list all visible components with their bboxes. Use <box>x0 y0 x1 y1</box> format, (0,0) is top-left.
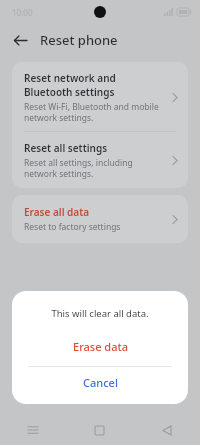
button[interactable]: Erase all data <box>12 195 188 243</box>
button[interactable]: Cancel <box>12 367 188 398</box>
staticText: Reset all settings, including network se… <box>24 157 166 179</box>
staticText: Reset Wi-Fi, Bluetooth and mobile networ… <box>24 101 166 123</box>
button[interactable]: Back <box>8 28 32 52</box>
staticText: Reset all settings <box>24 141 108 155</box>
button[interactable]: Home <box>66 426 133 435</box>
staticText: Erase data <box>73 339 128 354</box>
staticText: Reset to factory settings <box>24 221 121 233</box>
button[interactable]: Erase data <box>12 334 188 359</box>
staticText: Reset network and Bluetooth settings <box>24 71 166 99</box>
button[interactable]: Reset all settings <box>12 132 188 188</box>
button[interactable]: Back <box>133 426 200 435</box>
staticText: Cancel <box>83 375 118 390</box>
staticText: Erase all data <box>24 205 90 219</box>
button[interactable]: Reset network and Bluetooth settings <box>12 62 188 131</box>
staticText: This will clear all data. <box>12 307 188 320</box>
button[interactable]: Recent apps <box>0 426 66 434</box>
staticText: 10:00 <box>12 7 33 18</box>
staticText: Reset phone <box>40 31 118 49</box>
